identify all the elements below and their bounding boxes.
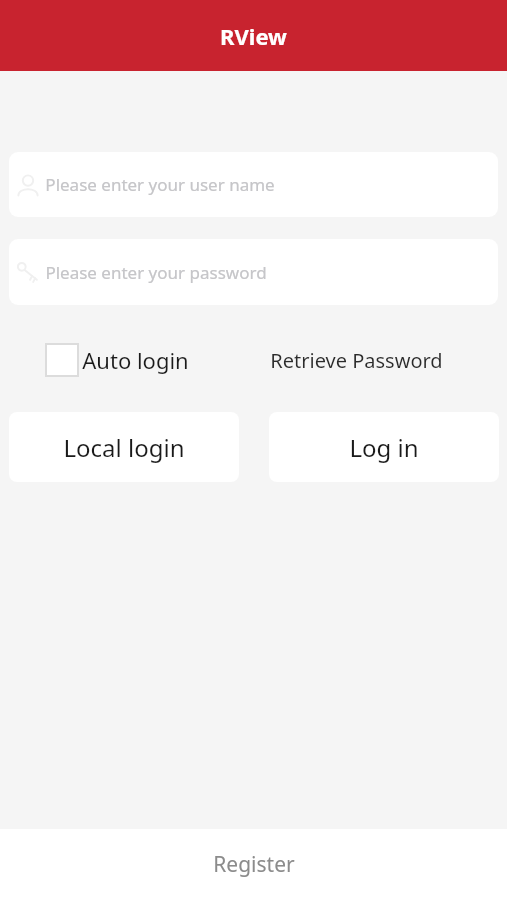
staticText: Local login: [63, 431, 185, 464]
button[interactable]: Please enter your password: [9, 239, 498, 305]
staticText: Please enter your user name: [45, 173, 275, 196]
button[interactable]: Local login: [9, 412, 239, 482]
staticText: Log in: [349, 431, 419, 464]
button[interactable]: Retrieve Password: [262, 338, 451, 382]
button[interactable]: Auto login: [45, 338, 189, 382]
button[interactable]: Register: [0, 829, 507, 900]
staticText: Register: [213, 850, 295, 879]
staticText: Retrieve Password: [270, 347, 443, 374]
button[interactable]: Log in: [269, 412, 499, 482]
staticText: RView: [220, 21, 287, 51]
staticText: Auto login: [82, 345, 189, 375]
button[interactable]: Please enter your user name: [9, 152, 498, 217]
staticText: Please enter your password: [45, 261, 267, 284]
